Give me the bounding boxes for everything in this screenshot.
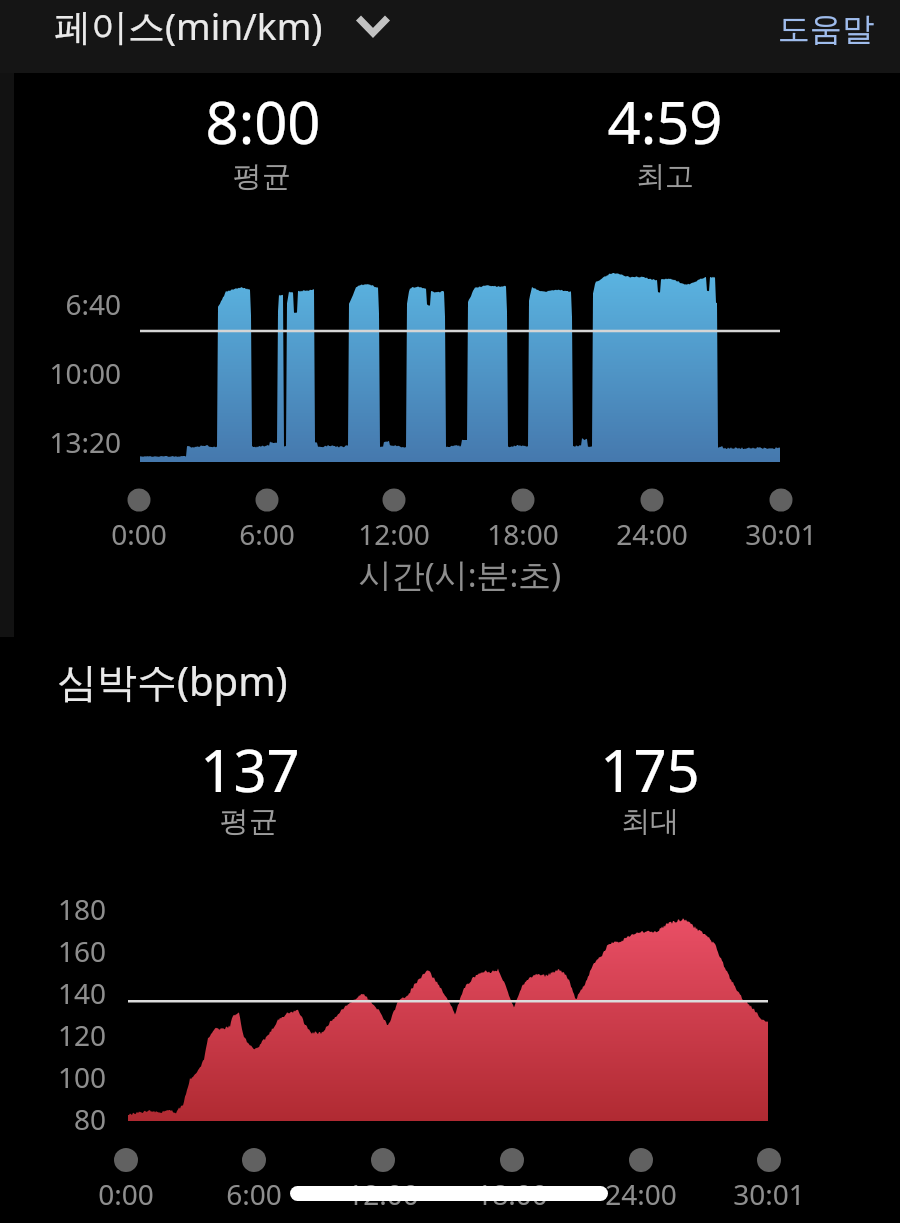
staticText: 160 [0, 932, 106, 970]
staticText: 137 [110, 730, 390, 809]
staticText: 6:40 [0, 285, 121, 323]
staticText: 평균 [109, 803, 389, 840]
staticText: 8:00 [123, 82, 403, 161]
staticText: 140 [0, 974, 106, 1012]
staticText: 24:00 [491, 1175, 791, 1213]
staticText: 180 [0, 890, 106, 928]
staticText: 평균 [122, 158, 402, 195]
staticText: 12:00 [244, 515, 544, 553]
staticText: 24:00 [502, 515, 802, 553]
staticText: 도움말 [778, 9, 874, 49]
button[interactable]: 도움말 [758, 2, 900, 71]
staticText: 100 [0, 1058, 106, 1096]
staticText: 시간(시:분:초) [310, 552, 610, 597]
staticText: 심박수(bpm) [57, 653, 288, 708]
staticText: 12:00 [233, 1175, 533, 1213]
staticText: 최대 [510, 803, 790, 840]
staticText: 30:01 [631, 515, 900, 553]
staticText: 페이스(min/km) [54, 0, 323, 51]
staticText: 18:00 [373, 515, 673, 553]
staticText: 13:20 [0, 423, 121, 461]
staticText: 6:00 [117, 515, 417, 553]
staticText: 30:01 [619, 1175, 900, 1213]
staticText: 10:00 [0, 354, 121, 392]
staticText: 175 [510, 730, 790, 809]
staticText: 6:00 [104, 1175, 404, 1213]
staticText: 18:00 [362, 1175, 662, 1213]
staticText: 80 [0, 1100, 106, 1138]
staticText: 4:59 [525, 82, 805, 161]
staticText: 0:00 [0, 515, 289, 553]
staticText: 0:00 [0, 1175, 276, 1213]
staticText: 최고 [525, 158, 805, 195]
button[interactable]: 페이스(min/km) [34, 2, 407, 71]
staticText: 120 [0, 1016, 106, 1054]
